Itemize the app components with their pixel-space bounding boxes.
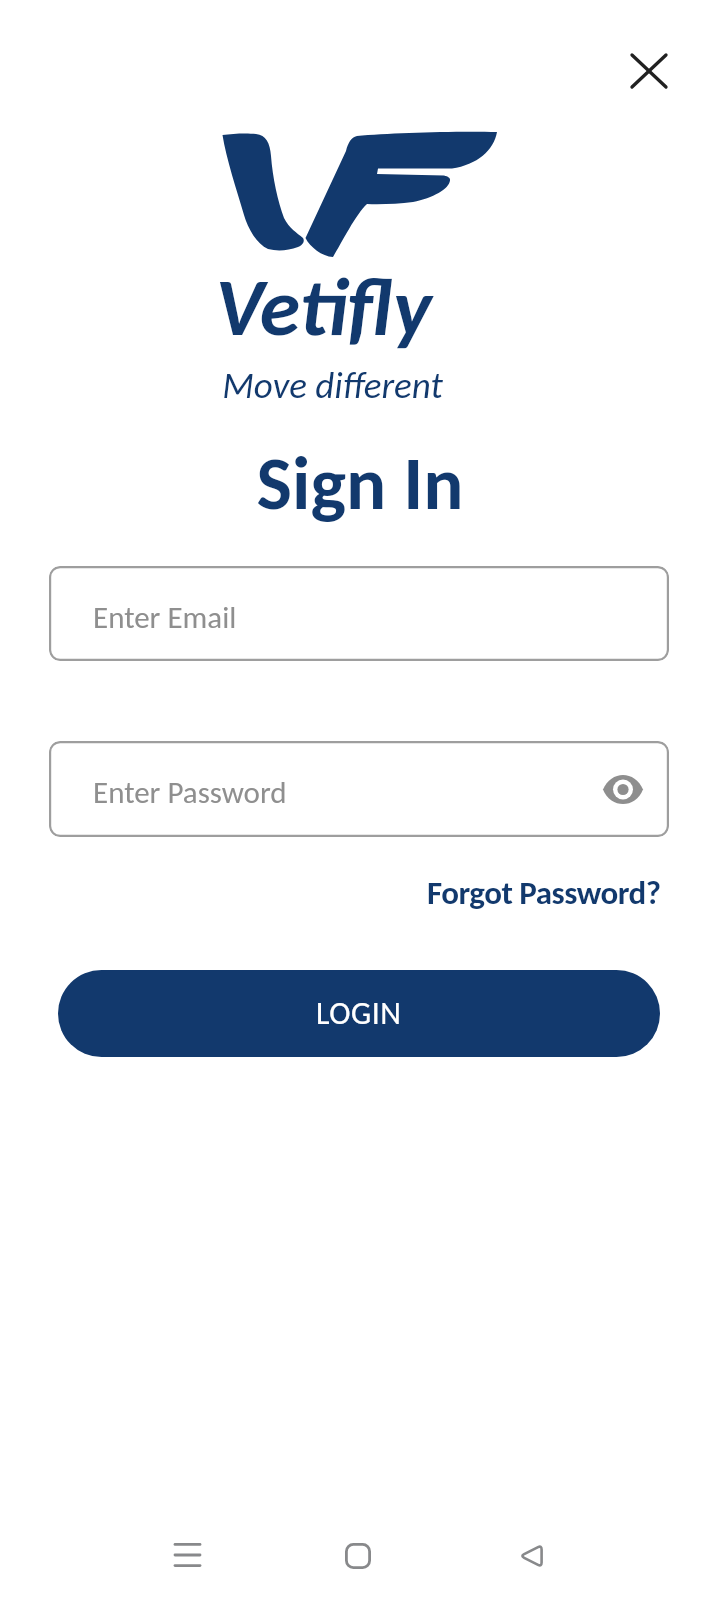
staticText: Sign In (0, 438, 720, 530)
button[interactable] (625, 47, 673, 95)
staticText: Vetifly (0, 257, 647, 357)
button[interactable] (163, 1531, 211, 1579)
button[interactable] (602, 768, 644, 810)
staticText: Enter Password (93, 773, 287, 811)
button[interactable]: Enter Password (49, 741, 669, 837)
button[interactable]: Forgot Password? (427, 873, 661, 913)
button[interactable]: LOGIN (58, 970, 660, 1057)
button[interactable]: Enter Email (49, 566, 669, 661)
staticText: LOGIN (316, 994, 402, 1033)
staticText: Enter Email (93, 598, 237, 636)
staticText: Move different (0, 363, 665, 408)
staticText: Forgot Password? (427, 873, 661, 913)
button[interactable] (334, 1532, 382, 1580)
button[interactable] (507, 1532, 555, 1580)
